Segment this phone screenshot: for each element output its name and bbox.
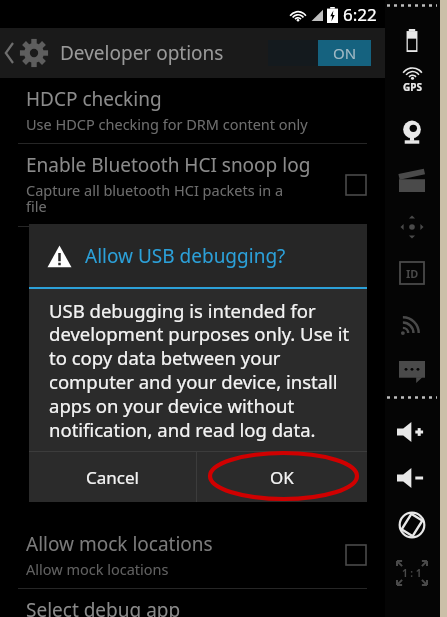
other: D-pad (398, 213, 426, 241)
other: Cellular (400, 312, 424, 336)
other: Webcam (399, 119, 425, 145)
button[interactable]: Cellular (385, 307, 439, 341)
other: Back (4, 43, 16, 63)
staticText: HDCP checking (26, 86, 162, 112)
button[interactable]: D-pad (385, 210, 439, 244)
other: Volume down (397, 468, 427, 488)
staticText: Developer options (60, 40, 224, 66)
staticText: OK (270, 466, 294, 489)
staticText: ID (406, 266, 419, 281)
staticText: Allow mock locations (26, 531, 213, 557)
staticText: Allow mock locations (26, 559, 169, 579)
button[interactable]: HDCP checking (0, 78, 385, 143)
other: Device ID (399, 261, 425, 285)
button[interactable]: Zoom 1:1 (385, 556, 439, 590)
button[interactable]: Enable Bluetooth HCI snoop log (0, 144, 385, 226)
staticText: Capture all bluetooth HCI packets in a f… (26, 180, 284, 217)
staticText: 1 : 1 (402, 566, 422, 580)
staticText: Allow USB debugging? (85, 243, 286, 269)
staticText: GPS (403, 80, 422, 94)
other: Volume up (397, 422, 427, 442)
button[interactable]: Device ID (385, 256, 439, 290)
other: Messages (399, 361, 425, 383)
button[interactable]: Allow mock locations (0, 523, 385, 588)
other: Record (399, 170, 425, 192)
button[interactable]: OK (197, 452, 367, 502)
button[interactable]: Toggle Allow mock locations (345, 544, 367, 566)
staticText: 6:22 (343, 3, 377, 26)
button[interactable]: Toggle Enable Bluetooth HCI snoop log (345, 174, 367, 196)
staticText: USB debugging is intended for developmen… (49, 298, 351, 443)
button[interactable]: Cancel (29, 452, 196, 502)
button[interactable]: ON (268, 40, 371, 66)
staticText: Cancel (86, 466, 139, 489)
button[interactable]: Rotate (385, 508, 439, 542)
other: Zoom 1:1 (397, 561, 427, 585)
button[interactable]: Back (4, 37, 224, 69)
button[interactable]: Volume up (385, 415, 439, 449)
button[interactable]: Volume down (385, 461, 439, 495)
staticText: Select debug app (26, 597, 181, 617)
other: Rotate (398, 511, 426, 539)
button[interactable]: Webcam (385, 115, 439, 149)
other: Battery (404, 29, 420, 52)
other: GPS (403, 67, 422, 80)
button[interactable]: Battery (385, 23, 439, 57)
button[interactable]: Select debug app (0, 589, 385, 617)
button[interactable]: Messages (385, 355, 439, 389)
staticText: Use HDCP checking for DRM content only (26, 114, 308, 134)
staticText: ON (333, 43, 357, 63)
staticText: Enable Bluetooth HCI snoop log (26, 152, 311, 178)
button[interactable]: GPS (385, 63, 439, 97)
button[interactable]: Record (385, 164, 439, 198)
